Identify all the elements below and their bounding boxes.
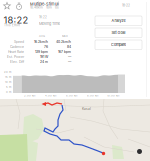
staticText: — (68, 60, 71, 64)
staticText: 84 (67, 45, 71, 49)
button[interactable]: Set Goal (95, 28, 142, 37)
staticText: AVG (39, 34, 45, 38)
staticText: 20 m (4, 70, 11, 74)
staticText: — (68, 55, 71, 59)
staticText: 4.00 km (45, 94, 56, 97)
staticText: 18:22 (3, 14, 28, 26)
button[interactable]: Locate (137, 149, 142, 154)
staticText: 76 (44, 45, 48, 49)
staticText: Heart Rate (8, 50, 24, 54)
staticText: 10 m (5, 80, 11, 84)
staticText: Elev. Diff (10, 60, 24, 64)
staticText: Set Goal (111, 30, 125, 35)
button[interactable]: Stopwatch (15, 2, 23, 10)
staticText: 8.00 km (87, 94, 98, 97)
staticText: 10.00 km (107, 94, 119, 97)
staticText: 15 m (5, 75, 11, 79)
staticText: 167 bpm (58, 50, 71, 54)
staticText: Moving Time (39, 21, 60, 26)
staticText: Est. Power (7, 55, 24, 59)
staticText: 139 bpm (35, 50, 48, 54)
staticText: 18:22 (39, 15, 47, 19)
staticText: MAX (62, 34, 68, 38)
staticText: 16.2km/h (34, 40, 48, 44)
staticText: Analyze (111, 18, 125, 23)
staticText: Multiple-Stimuli (30, 1, 59, 6)
staticText: 0 m (6, 90, 11, 94)
staticText: 18:22 (122, 3, 130, 7)
staticText: Compare (111, 42, 126, 47)
staticText: Speed (14, 40, 24, 44)
staticText: 2.00 km (24, 94, 35, 97)
staticText: 24 m (40, 60, 48, 64)
staticText: 40.2km/h (56, 40, 71, 44)
staticText: 5 m (6, 85, 11, 89)
staticText: 10.48km 10m 0s (30, 5, 59, 9)
button[interactable]: Favorite (3, 2, 11, 10)
staticText: 191 W (40, 55, 48, 59)
staticText: Kasal (82, 107, 91, 111)
button[interactable]: Analyze (95, 16, 142, 25)
staticText: 6.00 km (66, 94, 77, 97)
button[interactable]: Compare (95, 40, 142, 49)
staticText: This Effort (4, 23, 20, 27)
staticText: Cadence (10, 45, 24, 49)
